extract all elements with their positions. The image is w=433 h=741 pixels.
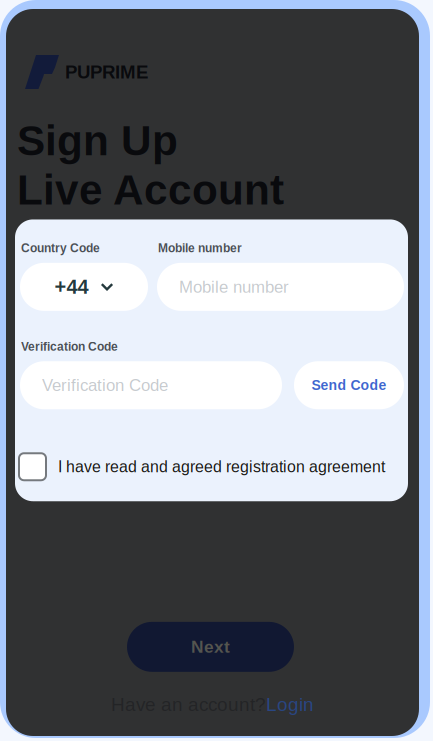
staticText: PUPRIME: [65, 62, 148, 82]
button[interactable]: I have read and agreed registration agre…: [19, 453, 408, 480]
staticText: Mobile number: [158, 241, 242, 255]
staticText: Login: [266, 694, 314, 715]
staticText: Mobile number: [179, 277, 289, 296]
staticText: Country Code: [21, 241, 100, 255]
staticText: Verification Code: [42, 376, 168, 395]
button[interactable]: Next: [127, 622, 294, 672]
button[interactable]: +44: [20, 263, 148, 311]
button[interactable]: Send Code: [294, 361, 404, 409]
staticText: I have read and agreed registration agre…: [58, 458, 385, 475]
staticText: Live Account: [17, 166, 284, 213]
staticText: Next: [191, 637, 230, 657]
staticText: Sign Up: [17, 117, 178, 164]
button[interactable]: Login: [266, 694, 314, 715]
button[interactable]: Mobile number: [157, 263, 404, 311]
staticText: Send Code: [311, 377, 386, 393]
staticText: Verification Code: [21, 340, 118, 353]
staticText: Have an account?: [111, 694, 266, 715]
button[interactable]: Verification Code: [20, 361, 282, 409]
staticText: +44: [54, 276, 88, 298]
